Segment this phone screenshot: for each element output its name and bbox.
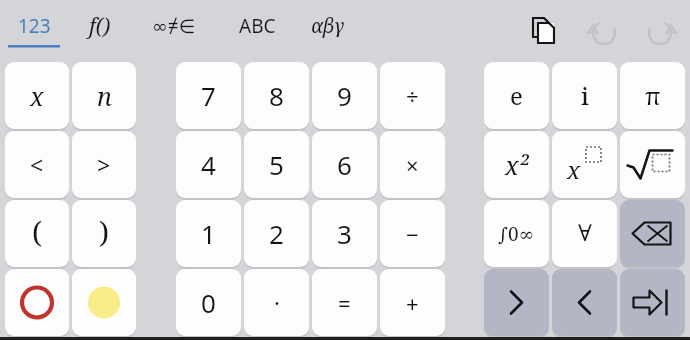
staticText: 5 — [269, 147, 284, 182]
button[interactable]: x to the power of — [552, 131, 617, 198]
button[interactable]: f() — [78, 8, 122, 52]
button[interactable]: n — [72, 62, 136, 129]
button[interactable]: Backspace — [620, 200, 685, 267]
staticText: ÷ — [406, 81, 419, 111]
button[interactable]: ) — [72, 200, 136, 267]
button[interactable]: 3 — [312, 200, 377, 267]
staticText: 9 — [337, 78, 352, 113]
button[interactable]: + — [380, 269, 445, 336]
staticText: ABC — [239, 13, 276, 39]
button[interactable]: × — [380, 131, 445, 198]
button[interactable]: π — [620, 62, 685, 129]
button[interactable]: e — [484, 62, 549, 129]
button[interactable]: ABC — [228, 8, 286, 52]
staticText: 2 — [269, 216, 284, 251]
button[interactable]: 9 — [312, 62, 377, 129]
staticText: 123 — [18, 13, 51, 39]
staticText: 6 — [337, 147, 352, 182]
staticText: = — [338, 288, 351, 318]
button[interactable]: Cursor right — [552, 269, 617, 336]
button[interactable]: − — [380, 200, 445, 267]
staticText: i — [581, 79, 589, 112]
button[interactable]: < — [5, 131, 69, 198]
staticText: n — [97, 79, 112, 113]
staticText: αβγ — [311, 13, 345, 39]
button[interactable]: i — [552, 62, 617, 129]
button[interactable]: 2 — [244, 200, 309, 267]
staticText: ∫0∞ — [498, 221, 535, 247]
staticText: < — [30, 149, 44, 180]
button[interactable]: Cursor left — [484, 269, 549, 336]
button[interactable]: 5 — [244, 131, 309, 198]
staticText: e — [510, 79, 523, 112]
button[interactable]: 4 — [176, 131, 241, 198]
button[interactable]: Copy — [522, 10, 564, 50]
button[interactable]: ∀ — [552, 200, 617, 267]
staticText: + — [406, 288, 419, 318]
staticText: 0 — [201, 285, 216, 320]
button[interactable]: = — [312, 269, 377, 336]
staticText: x — [30, 79, 44, 113]
button[interactable]: Redo — [639, 10, 681, 50]
staticText: ) — [99, 212, 110, 251]
button[interactable]: ∞≠∈ — [140, 8, 208, 52]
button[interactable]: 0 — [176, 269, 241, 336]
button[interactable]: ÷ — [380, 62, 445, 129]
button[interactable]: . — [244, 269, 309, 336]
staticText: × — [406, 150, 419, 180]
button[interactable]: > — [72, 131, 136, 198]
button[interactable]: Next field — [620, 269, 685, 336]
staticText: x² — [505, 148, 529, 182]
button[interactable]: x — [5, 62, 69, 129]
staticText: . — [274, 281, 280, 311]
staticText: 7 — [201, 78, 216, 113]
button[interactable]: 8 — [244, 62, 309, 129]
staticText: 3 — [337, 216, 352, 251]
staticText: > — [97, 149, 111, 180]
button[interactable]: Yellow circle — [72, 269, 136, 336]
button[interactable]: αβγ — [300, 8, 356, 52]
staticText: ∀ — [578, 220, 592, 247]
button[interactable]: 7 — [176, 62, 241, 129]
staticText: π — [645, 79, 661, 112]
staticText: f() — [89, 12, 111, 41]
staticText: 8 — [269, 78, 284, 113]
button[interactable]: 123 — [8, 8, 60, 52]
staticText: − — [406, 219, 419, 249]
staticText: ( — [32, 212, 43, 251]
button[interactable]: x² — [484, 131, 549, 198]
staticText: 4 — [201, 147, 216, 182]
staticText: 1 — [201, 216, 216, 251]
button[interactable]: Red circle — [5, 269, 69, 336]
button[interactable]: Square root — [620, 131, 685, 198]
button[interactable]: ( — [5, 200, 69, 267]
staticText: x — [567, 153, 581, 186]
button[interactable]: 6 — [312, 131, 377, 198]
button[interactable]: Undo — [583, 10, 625, 50]
button[interactable]: 1 — [176, 200, 241, 267]
button[interactable]: ∫0∞ — [484, 200, 549, 267]
staticText: ∞≠∈ — [152, 13, 196, 39]
